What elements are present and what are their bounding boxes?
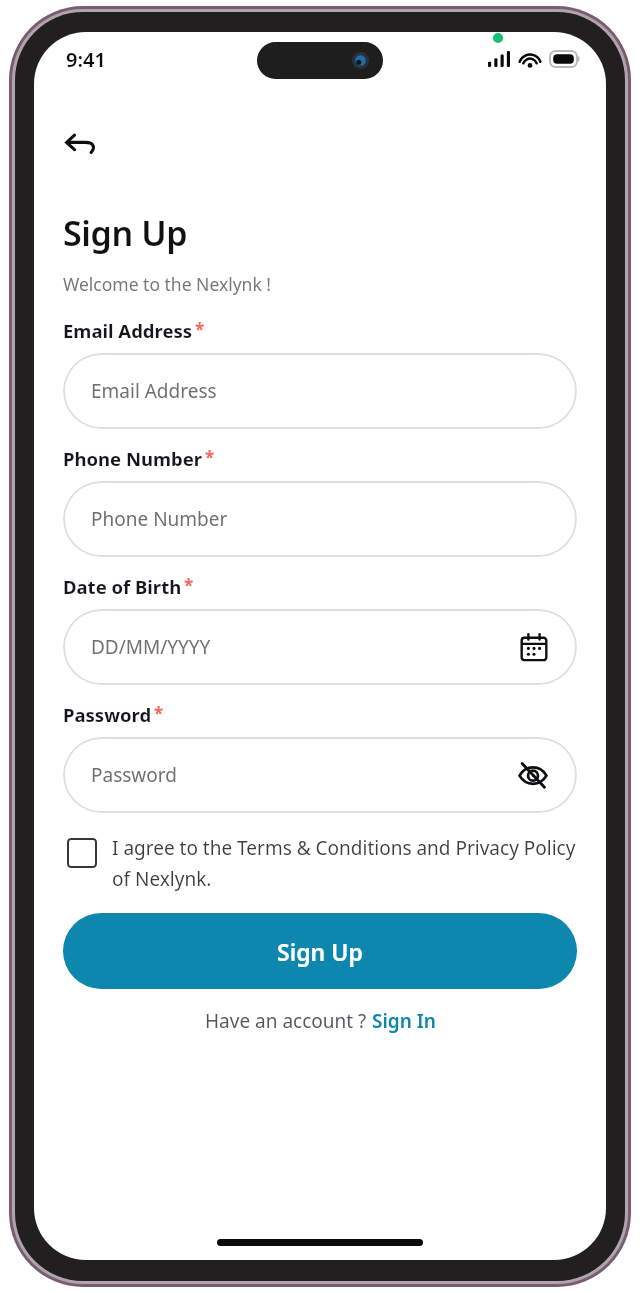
staticText: Welcome to the Nexlynk ! — [63, 272, 272, 296]
staticText: Password — [91, 762, 515, 788]
button[interactable]: Back — [63, 124, 107, 168]
staticText: Email Address — [63, 318, 193, 343]
button[interactable]: I agree to the Terms & Conditions and Pr… — [63, 835, 577, 891]
staticText: Email Address — [91, 378, 551, 404]
button[interactable]: Email Address — [63, 353, 577, 429]
button[interactable]: Password — [63, 737, 577, 813]
staticText: Date of Birth — [63, 574, 182, 599]
staticText: * — [154, 702, 164, 725]
button[interactable]: Have an account ? — [205, 1008, 436, 1034]
button[interactable]: Sign Up — [63, 913, 577, 989]
staticText: Sign Up — [277, 936, 363, 967]
staticText: 9:41 — [66, 46, 106, 73]
staticText: Phone Number — [63, 446, 203, 471]
button[interactable]: Show password — [515, 757, 551, 793]
button[interactable]: Phone Number — [63, 481, 577, 557]
staticText: I agree to the Terms & Conditions and Pr… — [112, 835, 577, 891]
staticText: DD/MM/YYYY — [91, 634, 517, 660]
staticText: * — [195, 318, 205, 341]
staticText: Phone Number — [91, 506, 551, 532]
button[interactable]: Pick date — [517, 630, 551, 664]
staticText: * — [205, 446, 215, 469]
staticText: Sign In — [372, 1008, 436, 1034]
button[interactable]: DD/MM/YYYY — [63, 609, 577, 685]
staticText: Password — [63, 702, 152, 727]
staticText: * — [184, 574, 194, 597]
staticText: Sign Up — [63, 210, 188, 256]
staticText: Have an account ? — [205, 1008, 372, 1034]
